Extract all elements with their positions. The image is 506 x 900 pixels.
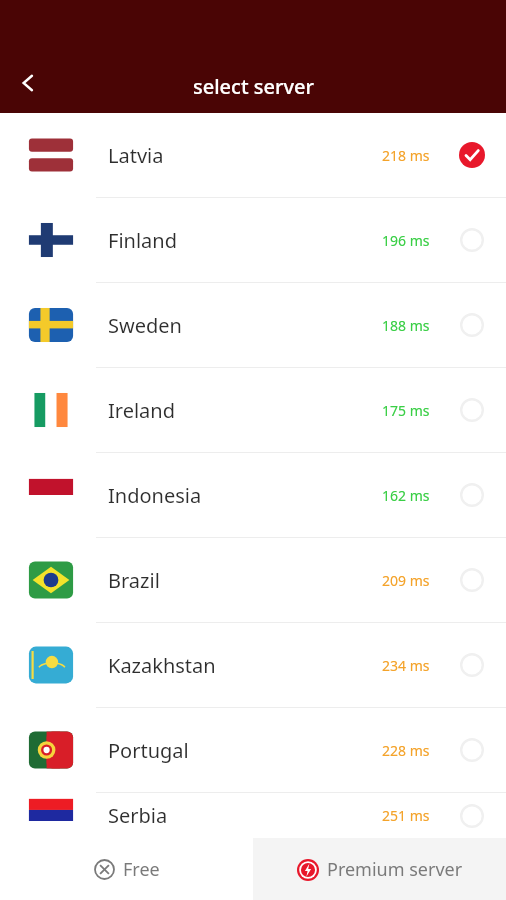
staticText: Brazil [108, 567, 382, 594]
staticText: Indonesia [108, 482, 382, 509]
staticText: 162 ms [382, 486, 430, 505]
staticText: select server [193, 73, 314, 100]
staticText: 209 ms [382, 571, 430, 590]
staticText: Finland [108, 227, 382, 254]
staticText: 251 ms [382, 806, 430, 825]
staticText: Serbia [108, 802, 382, 829]
staticText: 234 ms [382, 656, 430, 675]
button[interactable]: Serbia [0, 793, 506, 838]
staticText: 175 ms [382, 401, 430, 420]
staticText: 228 ms [382, 741, 430, 760]
staticText: Kazakhstan [108, 652, 382, 679]
button[interactable]: Premium server [253, 838, 506, 900]
staticText: 188 ms [382, 316, 430, 335]
button[interactable]: Indonesia [0, 453, 506, 537]
staticText: Sweden [108, 312, 382, 339]
staticText: 196 ms [382, 231, 430, 250]
staticText: Premium server [327, 857, 463, 882]
staticText: Free [123, 857, 160, 882]
button[interactable]: Kazakhstan [0, 623, 506, 707]
button[interactable]: Latvia [0, 113, 506, 197]
button[interactable]: Back [0, 55, 56, 111]
staticText: Ireland [108, 397, 382, 424]
button[interactable]: Brazil [0, 538, 506, 622]
staticText: Portugal [108, 737, 382, 764]
button[interactable]: Ireland [0, 368, 506, 452]
button[interactable]: Finland [0, 198, 506, 282]
button[interactable]: Free [0, 838, 253, 900]
button[interactable]: Portugal [0, 708, 506, 792]
button[interactable]: Sweden [0, 283, 506, 367]
staticText: 218 ms [382, 146, 430, 165]
staticText: Latvia [108, 142, 382, 169]
